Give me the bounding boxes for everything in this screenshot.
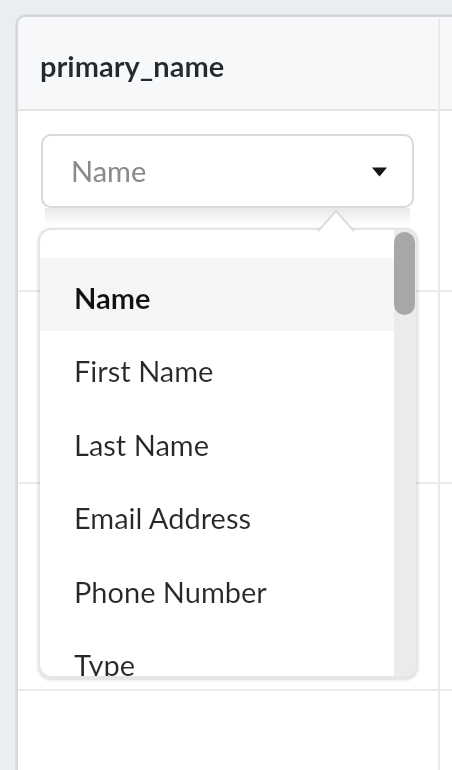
staticText: Name: [71, 153, 147, 188]
staticText: First Name: [74, 353, 214, 388]
staticText: Type: [74, 647, 136, 676]
staticText: Name: [74, 280, 151, 315]
staticText: Phone Number: [74, 574, 267, 609]
staticText: primary_name: [40, 48, 225, 83]
staticText: Email Address: [74, 500, 252, 535]
staticText: Last Name: [74, 427, 209, 462]
